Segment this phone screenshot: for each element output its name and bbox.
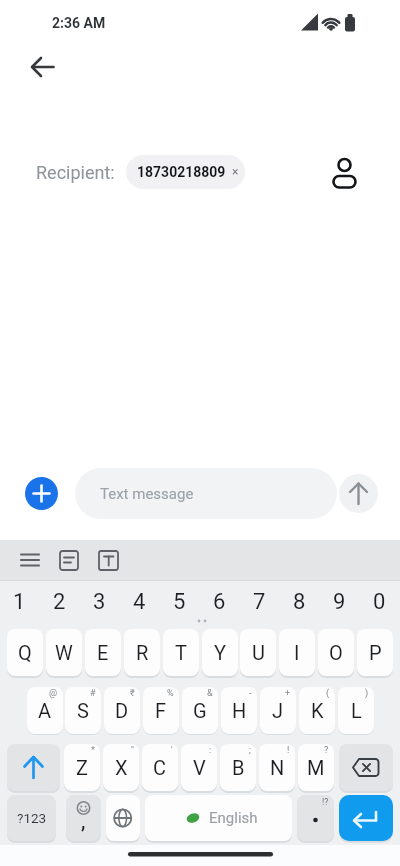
button[interactable]: I [279, 629, 315, 676]
button[interactable]: W [46, 629, 82, 676]
button[interactable]: 9 [320, 585, 358, 619]
button[interactable]: 7 [240, 585, 278, 619]
staticText: 6 [213, 589, 226, 615]
staticText: ) [365, 688, 369, 699]
staticText: X [115, 756, 128, 779]
staticText: 4 [133, 589, 146, 615]
button[interactable]: F [143, 687, 179, 734]
button[interactable]: K [299, 687, 335, 734]
staticText: I [294, 641, 300, 664]
button[interactable]: 4 [120, 585, 158, 619]
staticText: !? [322, 797, 329, 807]
button[interactable] [106, 795, 140, 841]
staticText: * [91, 745, 95, 756]
button[interactable]: J [260, 687, 296, 734]
staticText: S [77, 699, 89, 722]
button[interactable]: P [357, 629, 393, 676]
staticText: 2 [53, 589, 66, 615]
staticText: Q [18, 641, 32, 664]
staticText: 7 [253, 589, 266, 615]
button[interactable]: !? [297, 795, 334, 841]
staticText: F [155, 699, 167, 722]
staticText: M [307, 756, 325, 779]
button[interactable]: M [298, 744, 334, 791]
button[interactable]: 6 [200, 585, 238, 619]
staticText: N [270, 756, 285, 779]
staticText: ? [324, 745, 329, 756]
staticText: : [209, 745, 212, 756]
staticText: ! [287, 745, 290, 756]
staticText: P [369, 641, 382, 664]
button[interactable] [14, 546, 46, 574]
staticText: 3 [93, 589, 106, 615]
button[interactable]: , [66, 795, 101, 841]
button[interactable] [22, 47, 64, 87]
staticText: C [153, 756, 167, 779]
button[interactable]: 3 [80, 585, 118, 619]
button[interactable]: A [27, 687, 63, 734]
staticText: O [329, 641, 343, 664]
button[interactable]: L [338, 687, 374, 734]
button[interactable]: B [220, 744, 256, 791]
staticText: Y [214, 641, 227, 664]
button[interactable]: Y [202, 629, 238, 676]
staticText: 0 [373, 589, 386, 615]
button[interactable]: 1 [0, 585, 38, 619]
button[interactable]: D [104, 687, 140, 734]
button[interactable]: G [182, 687, 218, 734]
button[interactable]: S [65, 687, 101, 734]
staticText: W [55, 641, 73, 664]
staticText: Z [76, 756, 88, 779]
button[interactable] [53, 546, 85, 574]
button[interactable]: Q [7, 629, 43, 676]
button[interactable]: H [221, 687, 257, 734]
button[interactable]: N [259, 744, 295, 791]
button[interactable]: V [181, 744, 217, 791]
staticText: ₹ [130, 688, 135, 699]
staticText: D [115, 699, 129, 722]
staticText: - [249, 688, 252, 699]
button[interactable] [25, 477, 58, 510]
staticText: ( [326, 688, 330, 699]
staticText: A [38, 699, 52, 722]
button[interactable] [92, 546, 124, 574]
button[interactable]: English [145, 795, 292, 841]
button[interactable] [339, 474, 378, 513]
button[interactable]: Z [64, 744, 100, 791]
button[interactable]: 5 [160, 585, 198, 619]
button[interactable]: ?123 [7, 795, 56, 841]
staticText: J [272, 699, 284, 722]
staticText: + [285, 688, 291, 699]
staticText: & [207, 688, 213, 699]
button[interactable]: X [103, 744, 139, 791]
button[interactable]: 2 [40, 585, 78, 619]
staticText: B [232, 756, 245, 779]
button[interactable]: 0 [360, 585, 398, 619]
staticText: Text message [100, 485, 194, 503]
button[interactable] [339, 744, 393, 791]
button[interactable] [339, 795, 393, 841]
button[interactable]: Text message [75, 468, 337, 519]
staticText: , [81, 811, 86, 832]
button[interactable] [328, 148, 362, 192]
staticText: 5 [173, 589, 186, 615]
staticText: 9 [333, 589, 346, 615]
staticText: 2:36 AM [52, 15, 106, 31]
button[interactable]: R [124, 629, 160, 676]
button[interactable]: T [163, 629, 199, 676]
staticText: English [209, 809, 258, 827]
staticText: Recipient: [36, 162, 115, 183]
staticText: R [136, 641, 149, 664]
staticText: ' [171, 745, 173, 756]
staticText: 8 [293, 589, 306, 615]
button[interactable]: U [240, 629, 276, 676]
button[interactable]: C [142, 744, 178, 791]
button[interactable]: 8 [280, 585, 318, 619]
button[interactable]: 18730218809 [126, 155, 245, 189]
button[interactable]: O [318, 629, 354, 676]
button[interactable] [7, 744, 60, 791]
staticText: 1 [13, 589, 26, 615]
staticText: H [232, 699, 247, 722]
staticText: K [311, 699, 324, 722]
button[interactable]: E [85, 629, 121, 676]
